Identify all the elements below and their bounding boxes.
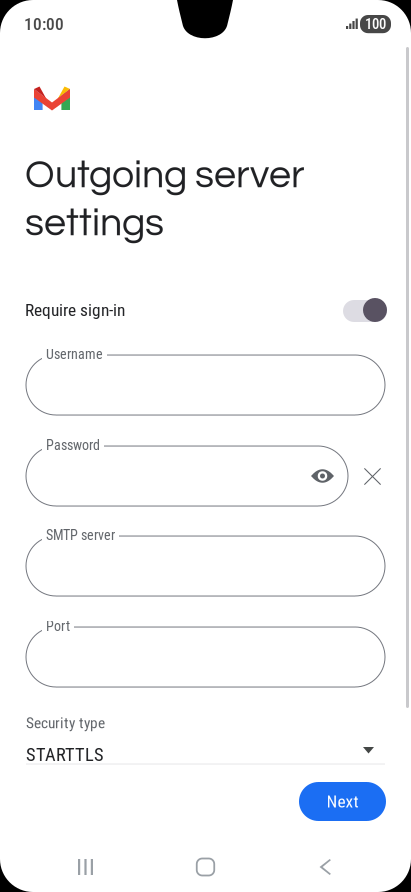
staticText: Username xyxy=(46,346,103,362)
staticText: Outgoing server xyxy=(25,155,305,195)
button[interactable]: Password xyxy=(26,446,348,506)
button[interactable]: Home xyxy=(145,847,265,887)
button[interactable]: Back xyxy=(265,847,385,887)
staticText: Next xyxy=(326,791,358,812)
button[interactable]: Clear xyxy=(364,468,381,485)
button[interactable]: Show password xyxy=(311,468,334,484)
button[interactable]: Security type xyxy=(26,712,385,772)
button[interactable]: Require sign-in xyxy=(343,298,387,322)
staticText: settings xyxy=(25,203,164,243)
staticText: 10:00 xyxy=(24,14,64,34)
button[interactable]: Next xyxy=(299,782,386,821)
staticText: 100 xyxy=(365,15,386,33)
staticText: Security type xyxy=(26,714,105,732)
staticText: SMTP server xyxy=(46,527,115,543)
button[interactable]: Port xyxy=(26,627,385,687)
staticText: STARTTLS xyxy=(26,744,104,765)
button[interactable]: Recent apps xyxy=(25,847,145,887)
staticText: Port xyxy=(46,618,70,634)
button[interactable]: SMTP server xyxy=(26,536,385,596)
staticText: Require sign-in xyxy=(25,300,125,320)
button[interactable]: Username xyxy=(26,355,385,415)
staticText: Password xyxy=(46,437,100,453)
